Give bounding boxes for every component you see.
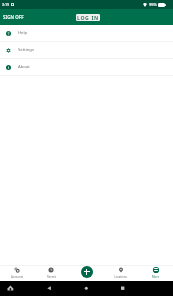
staticText: Recent xyxy=(47,275,56,279)
button[interactable]: Recent xyxy=(34,265,68,281)
button[interactable]: LOG IN xyxy=(76,14,100,21)
button[interactable]: More xyxy=(138,265,173,281)
staticText: 3:19 xyxy=(2,2,10,7)
staticText: 95% xyxy=(149,2,157,7)
staticText: About xyxy=(18,64,30,70)
staticText: Help xyxy=(18,30,28,36)
staticText: Locations xyxy=(114,275,127,279)
staticText: LOG IN xyxy=(77,14,99,21)
staticText: Settings xyxy=(18,47,34,53)
button[interactable]: SIGN OFF xyxy=(3,14,24,20)
button[interactable]: Add xyxy=(81,266,93,278)
button[interactable]: Accounts xyxy=(0,265,34,281)
button[interactable]: Settings xyxy=(0,42,173,58)
staticText: Accounts xyxy=(11,275,23,279)
staticText: More xyxy=(152,275,159,279)
button[interactable]: Help xyxy=(0,25,173,41)
button[interactable]: About xyxy=(0,59,173,75)
button[interactable]: Locations xyxy=(103,265,138,281)
